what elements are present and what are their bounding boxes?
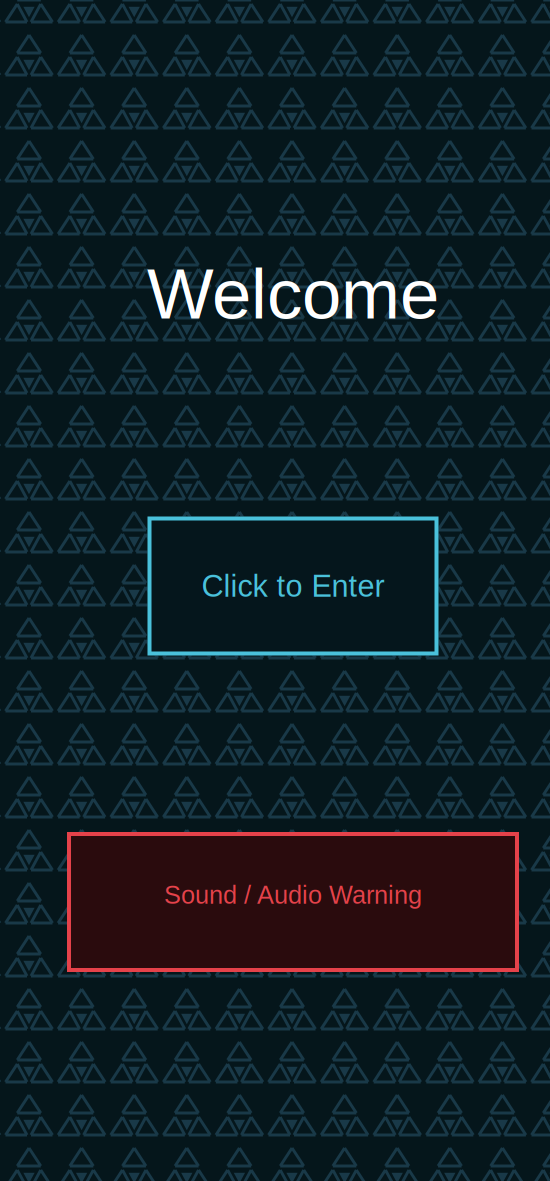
staticText: Welcome	[147, 254, 439, 333]
staticText: Sound / Audio Warning	[164, 881, 422, 909]
button[interactable]: Click to Enter	[147, 516, 438, 655]
button[interactable]: Sound / Audio Warning	[67, 832, 519, 972]
staticText: Click to Enter	[201, 569, 384, 603]
